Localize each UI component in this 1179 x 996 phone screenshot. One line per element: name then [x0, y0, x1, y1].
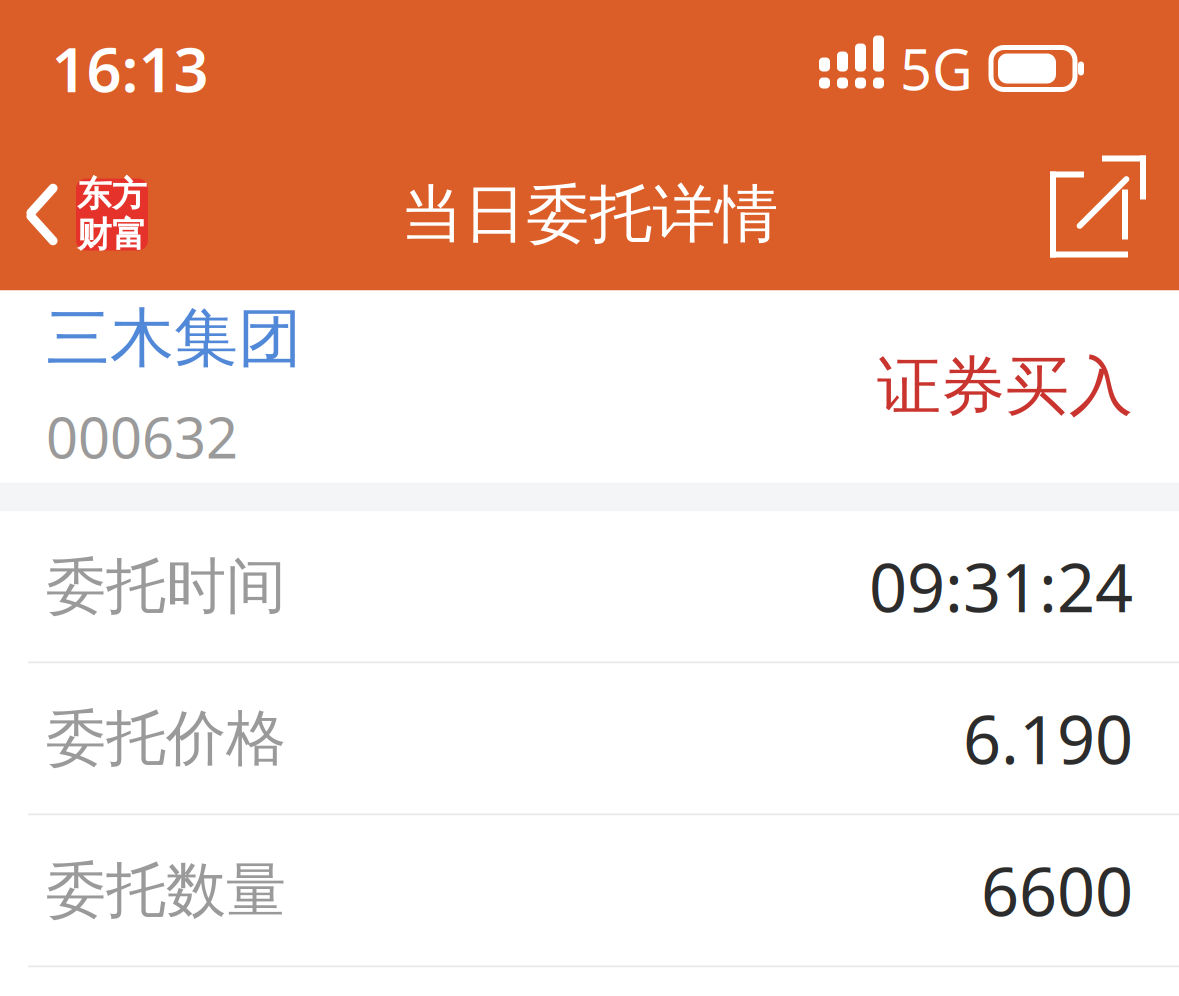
button[interactable]: 返回 — [0, 158, 148, 270]
staticText: 当日委托详情 — [400, 176, 778, 253]
staticText: 000632 — [46, 400, 238, 474]
staticText: 委托数量 — [46, 854, 286, 927]
staticText: 16:13 — [51, 28, 208, 109]
staticText: 委托价格 — [46, 702, 286, 775]
button[interactable]: 分享 — [1039, 144, 1179, 284]
staticText: 6.190 — [963, 694, 1133, 783]
staticText: 5G — [900, 31, 973, 106]
staticText: 09:31:24 — [869, 542, 1133, 631]
staticText: 6600 — [981, 846, 1133, 935]
staticText: 财富 — [77, 213, 147, 256]
staticText: 三木集团 — [46, 299, 302, 378]
staticText: 东方 — [77, 173, 147, 215]
staticText: 证券买入 — [877, 347, 1133, 426]
staticText: 委托时间 — [46, 550, 286, 623]
